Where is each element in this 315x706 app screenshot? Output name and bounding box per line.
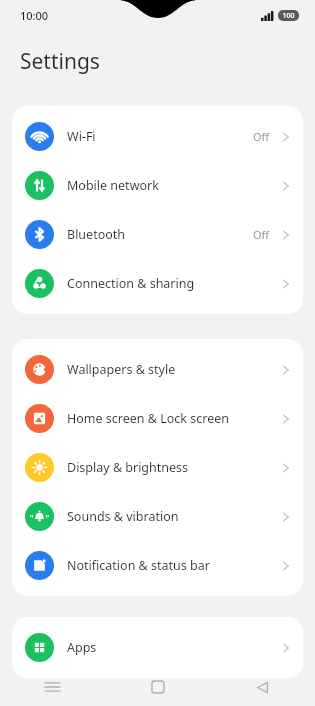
staticText: Settings [20, 47, 100, 76]
button[interactable]: Mobile network [12, 161, 303, 210]
staticText: Sounds & vibration [67, 508, 280, 525]
button[interactable]: Wi-Fi [12, 112, 303, 161]
button[interactable]: Apps [12, 623, 303, 672]
staticText: Off [253, 129, 270, 144]
button[interactable]: Notification & status bar [12, 541, 303, 590]
staticText: Bluetooth [67, 226, 253, 243]
button[interactable]: Home screen & Lock screen [12, 394, 303, 443]
button[interactable]: Home [105, 668, 210, 706]
staticText: Off [253, 227, 270, 242]
staticText: Display & brightness [67, 459, 280, 476]
button[interactable]: Connection & sharing [12, 259, 303, 308]
button[interactable]: Display & brightness [12, 443, 303, 492]
staticText: Notification & status bar [67, 557, 280, 574]
staticText: 100 [282, 11, 295, 21]
staticText: Apps [67, 639, 280, 656]
staticText: Home screen & Lock screen [67, 410, 280, 427]
staticText: Wi-Fi [67, 128, 253, 145]
staticText: Wallpapers & style [67, 361, 280, 378]
staticText: Connection & sharing [67, 275, 280, 292]
button[interactable]: Wallpapers & style [12, 345, 303, 394]
button[interactable]: Recent apps [0, 668, 105, 706]
button[interactable]: Bluetooth [12, 210, 303, 259]
staticText: Mobile network [67, 177, 280, 194]
button[interactable]: Back [210, 668, 315, 706]
button[interactable]: Sounds & vibration [12, 492, 303, 541]
staticText: 10:00 [20, 8, 49, 23]
